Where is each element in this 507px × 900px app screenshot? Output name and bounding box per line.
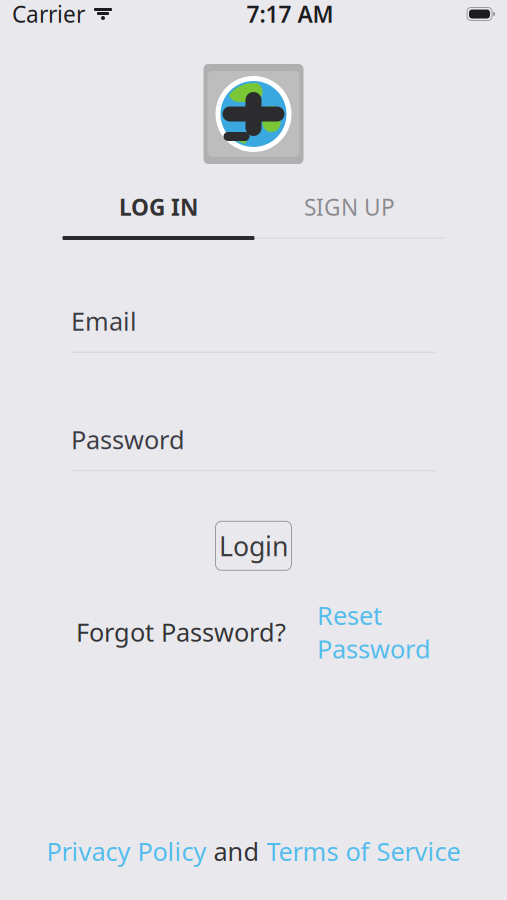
button[interactable]: Login (215, 521, 291, 570)
staticText: Privacy Policy (46, 834, 206, 868)
staticText: Reset Password (317, 598, 431, 666)
staticText: Login (219, 528, 288, 563)
staticText: Terms of Service (266, 834, 460, 868)
staticText: and (206, 834, 266, 868)
button[interactable]: SIGN UP (254, 192, 444, 222)
staticText: Forgot Password? (76, 615, 286, 649)
button[interactable]: Privacy Policy (46, 834, 206, 868)
staticText: Carrier (12, 0, 85, 29)
staticText: LOG IN (119, 192, 198, 222)
staticText: SIGN UP (304, 192, 395, 222)
staticText: Password (71, 423, 185, 456)
button[interactable]: LOG IN (62, 192, 254, 222)
button[interactable]: Reset Password (317, 598, 431, 666)
staticText: 7:17 AM (246, 0, 333, 29)
button[interactable]: Terms of Service (266, 834, 460, 868)
staticText: Email (71, 304, 137, 338)
